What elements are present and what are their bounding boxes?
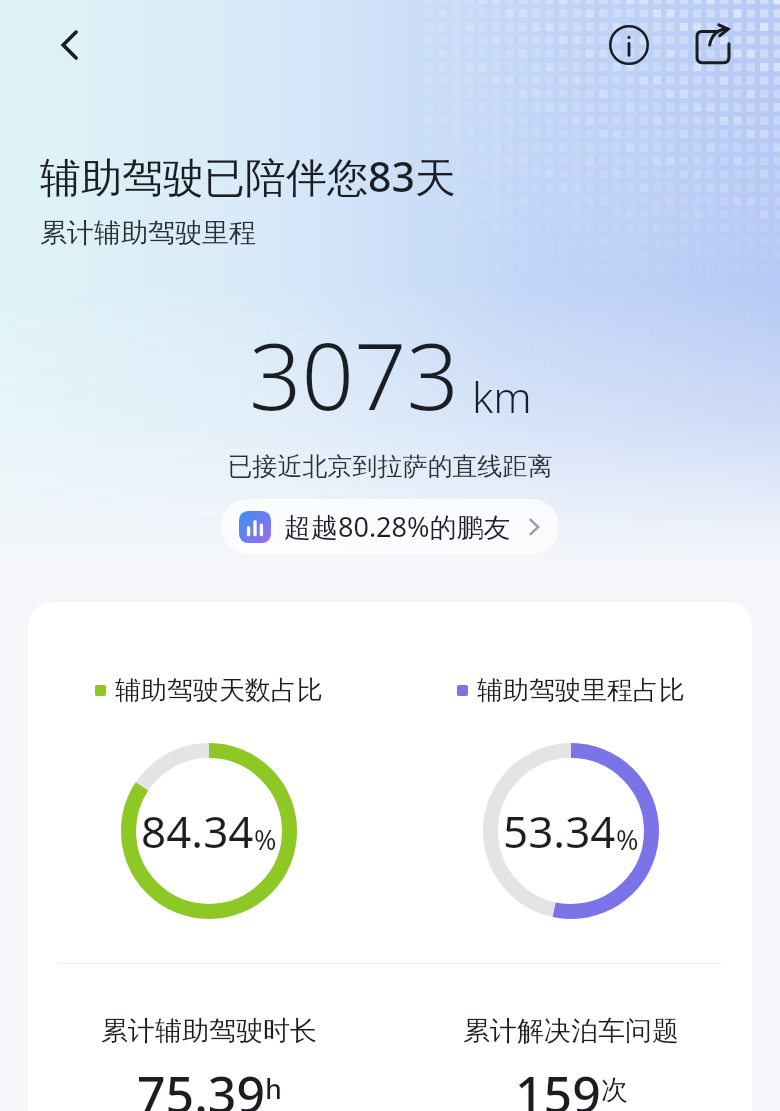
- staticText: 159: [515, 1060, 601, 1111]
- staticText: 次: [601, 1073, 628, 1107]
- staticText: 超越80.28%的鹏友: [284, 508, 511, 545]
- staticText: %: [254, 821, 277, 858]
- staticText: 辅助驾驶里程占比: [477, 674, 685, 707]
- staticText: %: [616, 821, 639, 858]
- staticText: 累计辅助驾驶时长: [101, 1014, 317, 1048]
- staticText: 辅助驾驶天数占比: [115, 674, 323, 707]
- button[interactable]: 超越80.28%的鹏友: [221, 499, 559, 554]
- staticText: 53.34: [503, 801, 616, 861]
- staticText: km: [472, 367, 532, 426]
- button[interactable]: Share: [682, 14, 744, 76]
- button[interactable]: Back: [38, 13, 102, 77]
- staticText: h: [265, 1070, 282, 1107]
- staticText: 84.34: [141, 801, 254, 861]
- button[interactable]: Info: [598, 14, 660, 76]
- staticText: 3073: [249, 312, 460, 437]
- staticText: 75.39: [137, 1060, 265, 1111]
- staticText: 辅助驾驶已陪伴您83天: [40, 148, 456, 204]
- staticText: 累计解决泊车问题: [463, 1014, 679, 1048]
- staticText: 已接近北京到拉萨的直线距离: [0, 451, 780, 482]
- staticText: 累计辅助驾驶里程: [40, 216, 256, 250]
